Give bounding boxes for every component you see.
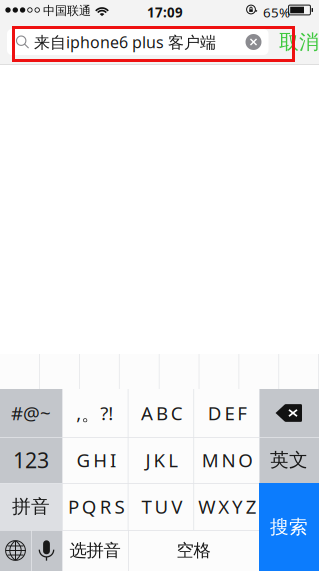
staticText: 空格	[176, 540, 210, 561]
staticText: 123	[13, 446, 49, 474]
staticText: ABC	[141, 401, 183, 425]
button[interactable]: ,。?!	[62, 389, 128, 437]
staticText: 17:09	[147, 3, 183, 21]
button[interactable]: Delete	[259, 389, 319, 437]
staticText: PQRS	[68, 494, 124, 519]
staticText: 65%	[263, 3, 290, 21]
button[interactable]: 选拼音	[62, 530, 128, 571]
button[interactable]: MNO	[193, 437, 259, 483]
staticText: WXYZ	[198, 494, 257, 519]
staticText: 搜索	[270, 515, 308, 538]
button[interactable]: 搜索	[259, 483, 319, 571]
button[interactable]: Clear text	[245, 34, 268, 50]
staticText: GHI	[76, 448, 116, 472]
button[interactable]: Switch keyboard	[0, 530, 31, 571]
button[interactable]: 拼音	[0, 483, 62, 530]
button[interactable]: 取消	[281, 29, 317, 55]
staticText: JKL	[146, 448, 178, 472]
staticText: 来自iphone6 plus 客户端	[34, 31, 216, 53]
button[interactable]: 英文	[259, 437, 319, 483]
staticText: MNO	[202, 448, 253, 472]
staticText: TUV	[142, 494, 182, 519]
button[interactable]: Dictation	[31, 530, 62, 571]
button[interactable]: DEF	[193, 389, 259, 437]
button[interactable]: GHI	[62, 437, 128, 483]
button[interactable]: JKL	[128, 437, 193, 483]
staticText: DEF	[208, 401, 247, 425]
button[interactable]: 123	[0, 437, 62, 483]
staticText: #@~	[11, 401, 51, 425]
staticText: 英文	[270, 448, 308, 471]
button[interactable]: WXYZ	[193, 483, 259, 530]
staticText: 选拼音	[69, 540, 120, 561]
staticText: 取消	[279, 30, 319, 54]
staticText: 中国联通	[43, 3, 91, 18]
button[interactable]: TUV	[128, 483, 193, 530]
button[interactable]: 空格	[128, 530, 259, 571]
staticText: 拼音	[12, 495, 50, 518]
button[interactable]: #@~	[0, 389, 62, 437]
button[interactable]: PQRS	[62, 483, 128, 530]
staticText: ,。?!	[76, 401, 113, 425]
button[interactable]: ABC	[128, 389, 193, 437]
